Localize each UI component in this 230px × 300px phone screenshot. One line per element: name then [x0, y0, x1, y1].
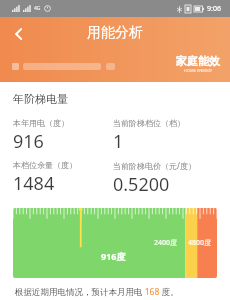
- staticText: 当前阶梯电价（元/度）: [113, 160, 196, 171]
- staticText: 本档位余量（度）: [13, 160, 77, 170]
- staticText: 年阶梯电量: [13, 92, 68, 106]
- staticText: 家庭能效: [176, 54, 220, 68]
- button[interactable]: Back: [6, 21, 32, 47]
- button[interactable]: 916度: [13, 208, 217, 278]
- staticText: 1: [113, 129, 124, 154]
- staticText: 916度: [101, 250, 126, 262]
- staticText: 本年用电（度）: [13, 118, 69, 128]
- staticText: 916: [13, 129, 44, 154]
- staticText: 0.5200: [113, 172, 170, 197]
- staticText: 4800度: [188, 238, 212, 248]
- staticText: 1484: [13, 171, 55, 196]
- staticText: 当前阶梯档位（档）: [113, 118, 185, 128]
- staticText: 9:06: [207, 4, 221, 14]
- staticText: HOME ENERGY: [184, 68, 213, 73]
- staticText: 根据近期用电情况，预计本月用电 168 度。: [15, 286, 179, 298]
- staticText: 用能分析: [87, 24, 143, 42]
- staticText: 4G: [34, 5, 41, 12]
- staticText: 2400度: [154, 238, 178, 248]
